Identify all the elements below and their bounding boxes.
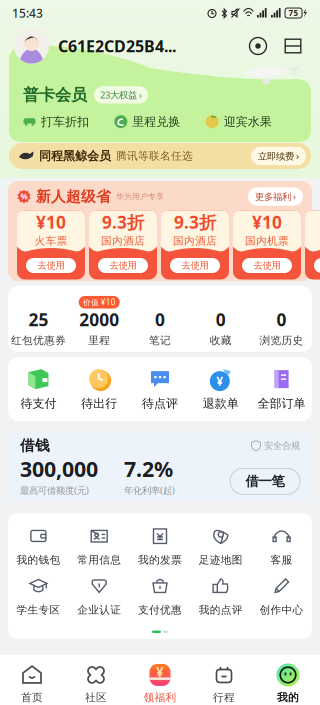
- button[interactable]: 普卡会员: [23, 85, 297, 105]
- button[interactable]: 待支付: [8, 367, 69, 411]
- staticText: 9.3折: [102, 210, 144, 233]
- staticText: 待点评: [142, 396, 178, 411]
- button[interactable]: 我的: [256, 663, 320, 704]
- button[interactable]: 社区: [64, 663, 128, 704]
- button[interactable]: 扫一扫: [245, 33, 271, 59]
- staticText: 2000: [79, 308, 119, 331]
- staticText: 我的钱包: [16, 553, 60, 566]
- staticText: 普卡会员: [23, 85, 87, 105]
- button[interactable]: ¥10: [233, 210, 301, 279]
- staticText: 我的点评: [199, 603, 243, 616]
- staticText: 华为用户专享: [116, 192, 164, 201]
- button[interactable]: ¥: [190, 367, 251, 411]
- button[interactable]: 我的点评: [190, 571, 251, 621]
- staticText: 退款单: [203, 396, 239, 411]
- staticText: 首页: [21, 691, 43, 704]
- button[interactable]: 0: [251, 291, 312, 347]
- staticText: 红包优惠券: [11, 334, 66, 347]
- staticText: 年化利率(起): [124, 484, 175, 496]
- staticText: C61E2CD25B4...: [58, 35, 176, 57]
- button[interactable]: 行程: [192, 663, 256, 704]
- button[interactable]: 设置: [280, 33, 306, 59]
- staticText: 国内酒店: [173, 234, 217, 248]
- staticText: 行程: [213, 691, 235, 704]
- button[interactable]: 待出行: [69, 367, 130, 411]
- staticText: 领福利: [143, 691, 176, 704]
- button[interactable]: ¥: [128, 663, 192, 704]
- button[interactable]: 我的钱包: [8, 521, 69, 571]
- staticText: 里程: [88, 334, 110, 347]
- staticText: 国内酒店: [101, 234, 145, 248]
- button[interactable]: 迎宾水果: [206, 114, 297, 129]
- button[interactable]: 9.3折: [89, 210, 157, 279]
- staticText: 国内机票: [245, 234, 289, 248]
- staticText: 收藏: [210, 334, 232, 347]
- staticText: 学生专区: [16, 603, 60, 616]
- button[interactable]: 企业认证: [69, 571, 130, 621]
- staticText: 价值 ¥10: [83, 297, 116, 307]
- staticText: 迎宾水果: [224, 114, 272, 129]
- staticText: 立即续费 ›: [258, 150, 299, 162]
- staticText: 浏览历史: [260, 334, 304, 347]
- staticText: ¥10: [36, 210, 66, 233]
- staticText: 安全合规: [261, 440, 300, 451]
- button[interactable]: 0: [130, 291, 190, 347]
- staticText: 25: [28, 308, 48, 331]
- staticText: 企业认证: [77, 603, 121, 616]
- staticText: 去使用: [253, 260, 280, 271]
- staticText: 常用信息: [77, 553, 121, 566]
- staticText: 去使用: [109, 260, 136, 271]
- staticText: 0: [155, 308, 165, 331]
- button[interactable]: 待点评: [130, 367, 190, 411]
- staticText: 我的: [277, 691, 299, 704]
- staticText: 支付优惠: [138, 603, 182, 616]
- staticText: 7.2%: [124, 455, 173, 483]
- button[interactable]: 借一笔: [230, 468, 300, 494]
- staticText: 更多福利 ›: [255, 190, 296, 203]
- button[interactable]: 打车折扣: [23, 114, 114, 129]
- staticText: 最高可借额度(元): [20, 484, 89, 496]
- button[interactable]: ¥10: [17, 210, 85, 279]
- button[interactable]: 2000: [69, 291, 130, 347]
- staticText: 客服: [271, 553, 293, 566]
- staticText: ¥10: [252, 210, 282, 233]
- staticText: 社区: [85, 691, 107, 704]
- staticText: 0: [277, 308, 287, 331]
- staticText: 9.3折: [174, 210, 216, 233]
- staticText: 腾讯等联名任选: [116, 149, 193, 162]
- staticText: 300,000: [20, 455, 98, 483]
- button[interactable]: 学生专区: [8, 571, 69, 621]
- staticText: 新人超级省: [36, 187, 111, 205]
- button[interactable]: 9.3折: [161, 210, 229, 279]
- button[interactable]: 创作中心: [251, 571, 312, 621]
- button[interactable]: 足迹地图: [190, 521, 251, 571]
- button[interactable]: 首页: [0, 663, 64, 704]
- staticText: 去使用: [37, 260, 64, 271]
- staticText: 借一笔: [245, 473, 284, 490]
- staticText: 同程黑鲸会员: [39, 149, 111, 163]
- staticText: 去使用: [181, 260, 208, 271]
- staticText: 火车票: [34, 234, 67, 248]
- button[interactable]: 常用信息: [69, 521, 130, 571]
- button[interactable]: 0: [190, 291, 251, 347]
- staticText: 足迹地图: [199, 553, 243, 566]
- button[interactable]: 全部订单: [251, 367, 312, 411]
- staticText: 里程兑换: [132, 114, 180, 129]
- button[interactable]: 里程兑换: [114, 114, 206, 129]
- button[interactable]: 我的发票: [130, 521, 190, 571]
- button[interactable]: 同程黑鲸会员: [0, 143, 320, 169]
- button[interactable]: 客服: [251, 521, 312, 571]
- button[interactable]: 25: [8, 291, 69, 347]
- button[interactable]: 单: [305, 210, 320, 279]
- button[interactable]: 支付优惠: [130, 571, 190, 621]
- staticText: %: [20, 191, 27, 202]
- staticText: 笔记: [149, 334, 171, 347]
- button[interactable]: 更多福利 ›: [248, 187, 303, 206]
- staticText: 全部订单: [258, 396, 306, 411]
- staticText: 75: [288, 8, 298, 18]
- staticText: 我的发票: [138, 553, 182, 566]
- staticText: 创作中心: [260, 603, 304, 616]
- staticText: 打车折扣: [41, 114, 89, 129]
- staticText: ¥: [216, 373, 223, 389]
- staticText: ¥: [156, 663, 164, 681]
